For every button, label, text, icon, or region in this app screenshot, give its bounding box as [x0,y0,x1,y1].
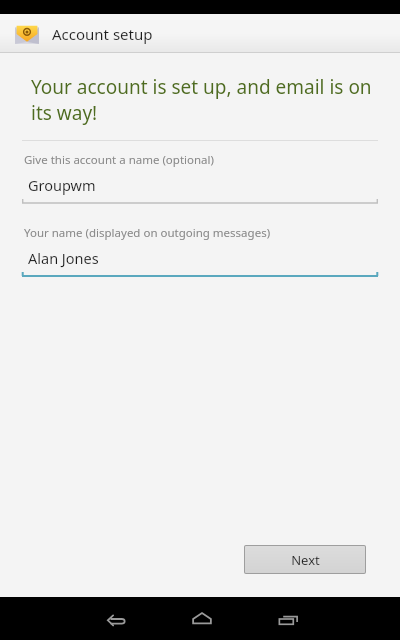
staticText: Groupwm [28,175,96,195]
staticText: Give this account a name (optional) [24,152,214,168]
staticText: Your account is set up, and email is on … [31,74,380,126]
button[interactable]: Back [88,597,144,640]
button[interactable]: Groupwm [22,175,378,206]
button[interactable]: Account setup [0,14,400,53]
button[interactable]: Home [174,597,230,640]
staticText: Your name (displayed on outgoing message… [24,225,271,241]
staticText: Next [291,551,320,569]
button[interactable]: Recent apps [260,597,316,640]
staticText: Alan Jones [28,248,99,268]
button[interactable]: Alan Jones [22,248,378,279]
button[interactable]: Next [245,546,365,573]
staticText: Account setup [52,24,153,44]
